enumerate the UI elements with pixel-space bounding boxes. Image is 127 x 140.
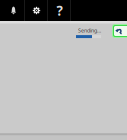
button[interactable]: Settings — [25, 0, 48, 21]
button[interactable]: Undo — [112, 24, 127, 38]
button[interactable]: Notifications — [2, 0, 25, 21]
staticText: ? — [56, 2, 62, 19]
staticText: Sending… — [78, 27, 101, 34]
button[interactable]: Help — [48, 0, 71, 21]
